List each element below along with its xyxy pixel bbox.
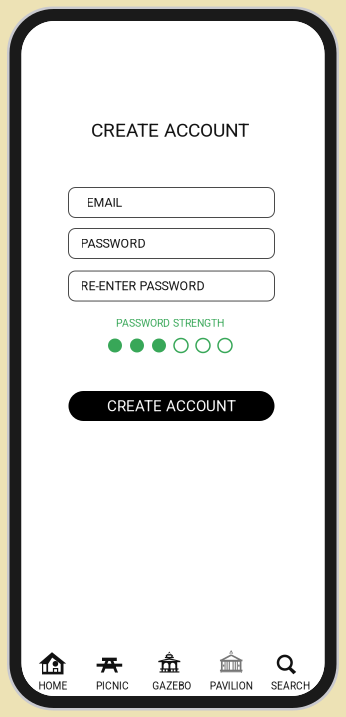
staticText: RE-ENTER PASSWORD <box>80 279 204 293</box>
button[interactable]: EMAIL <box>68 187 274 217</box>
staticText: PAVILION <box>210 680 253 692</box>
staticText: PICNIC <box>96 680 129 692</box>
button[interactable]: GAZEBO <box>142 649 201 691</box>
button[interactable]: PASSWORD <box>68 228 274 258</box>
staticText: PASSWORD <box>80 236 145 251</box>
staticText: PASSWORD STRENGTH <box>116 317 224 329</box>
staticText: CREATE ACCOUNT <box>107 397 236 415</box>
staticText: GAZEBO <box>152 680 191 692</box>
staticText: EMAIL <box>86 195 122 210</box>
staticText: HOME <box>38 680 67 692</box>
staticText: CREATE ACCOUNT <box>91 119 249 141</box>
button[interactable]: PAVILION <box>201 649 261 691</box>
staticText: SEARCH <box>271 680 310 692</box>
button[interactable]: RE-ENTER PASSWORD <box>68 271 274 301</box>
button[interactable]: HOME <box>23 649 83 691</box>
button[interactable]: SEARCH <box>261 649 320 691</box>
button[interactable]: CREATE ACCOUNT <box>68 391 274 421</box>
button[interactable]: PICNIC <box>83 649 142 691</box>
